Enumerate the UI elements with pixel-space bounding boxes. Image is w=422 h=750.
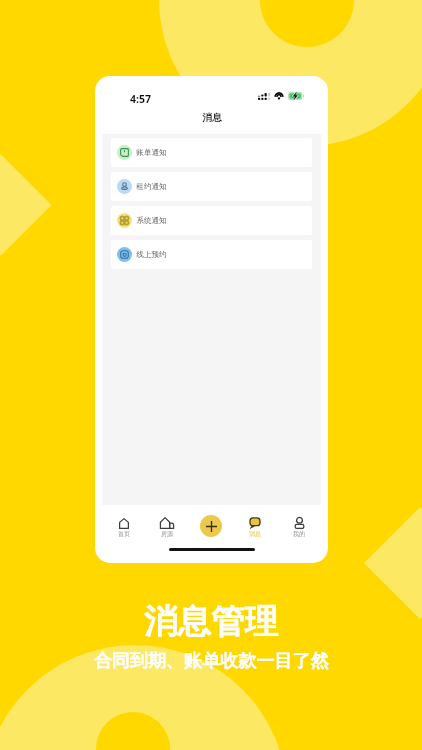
button[interactable]: 线上预约 — [111, 240, 312, 269]
button[interactable]: 首页 — [102, 517, 145, 538]
button[interactable]: 房源 — [145, 517, 189, 538]
staticText: 4:57 — [130, 92, 151, 106]
staticText: 合同到期、账单收款一目了然 — [93, 650, 329, 673]
staticText: 账单通知 — [136, 148, 167, 158]
staticText: 租约通知 — [136, 182, 167, 192]
staticText: 消息 — [202, 112, 222, 124]
staticText: 消息管理 — [144, 601, 278, 643]
button[interactable]: 我的 — [277, 517, 321, 538]
button[interactable]: 租约通知 — [111, 172, 312, 201]
staticText: 线上预约 — [136, 250, 167, 260]
button[interactable]: 账单通知 — [111, 138, 312, 167]
staticText: 我的 — [293, 530, 305, 538]
button[interactable]: Add — [200, 515, 222, 537]
staticText: 消息 — [249, 530, 261, 538]
button[interactable]: 消息 — [233, 517, 277, 538]
staticText: 首页 — [118, 530, 130, 538]
staticText: 房源 — [161, 530, 173, 538]
staticText: 系统通知 — [136, 216, 167, 226]
button[interactable]: 系统通知 — [111, 206, 312, 235]
